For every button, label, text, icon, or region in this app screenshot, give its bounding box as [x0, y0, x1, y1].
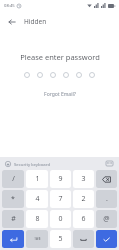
- button[interactable]: #: [2, 210, 24, 228]
- button[interactable]: @: [96, 210, 117, 228]
- button[interactable]: .: [96, 190, 117, 208]
- button[interactable]: 5: [50, 230, 71, 248]
- button[interactable]: 2: [73, 190, 94, 208]
- button[interactable]: Done: [96, 230, 117, 248]
- staticText: 6: [81, 214, 86, 224]
- button[interactable]: Hide keyboard: [105, 159, 114, 168]
- button[interactable]: 4: [26, 190, 48, 208]
- button[interactable]: *: [2, 190, 24, 208]
- staticText: 7: [58, 194, 63, 204]
- button[interactable]: Backspace: [96, 170, 117, 188]
- staticText: 4: [35, 194, 40, 204]
- staticText: 9: [58, 174, 63, 184]
- staticText: Hidden: [24, 17, 47, 26]
- staticText: Forgot Email?: [44, 91, 76, 98]
- button[interactable]: 1: [26, 170, 48, 188]
- staticText: /: [12, 174, 15, 184]
- staticText: 2: [81, 194, 86, 204]
- button[interactable]: Space: [73, 230, 94, 248]
- staticText: 8: [35, 214, 40, 224]
- button[interactable]: !#$: [26, 230, 48, 248]
- button[interactable]: 8: [26, 210, 48, 228]
- button[interactable]: Tab: [2, 230, 24, 248]
- staticText: Please enter password: [20, 52, 100, 62]
- staticText: 08:45: [4, 3, 15, 9]
- staticText: #: [11, 214, 16, 224]
- button[interactable]: Back: [5, 15, 19, 29]
- staticText: @: [103, 214, 110, 224]
- button[interactable]: 3: [73, 170, 94, 188]
- button[interactable]: 6: [73, 210, 94, 228]
- staticText: 1: [35, 174, 40, 184]
- button[interactable]: 7: [50, 190, 71, 208]
- staticText: .: [106, 194, 108, 204]
- button[interactable]: 0: [50, 210, 71, 228]
- button[interactable]: 9: [50, 170, 71, 188]
- button[interactable]: /: [2, 170, 24, 188]
- staticText: 3: [81, 174, 86, 184]
- staticText: 0: [58, 214, 63, 224]
- button[interactable]: Forgot Email?: [40, 89, 80, 100]
- staticText: *: [11, 194, 15, 204]
- staticText: 5: [58, 234, 63, 244]
- staticText: !#$: [34, 236, 41, 242]
- staticText: Security keyboard: [14, 161, 51, 167]
